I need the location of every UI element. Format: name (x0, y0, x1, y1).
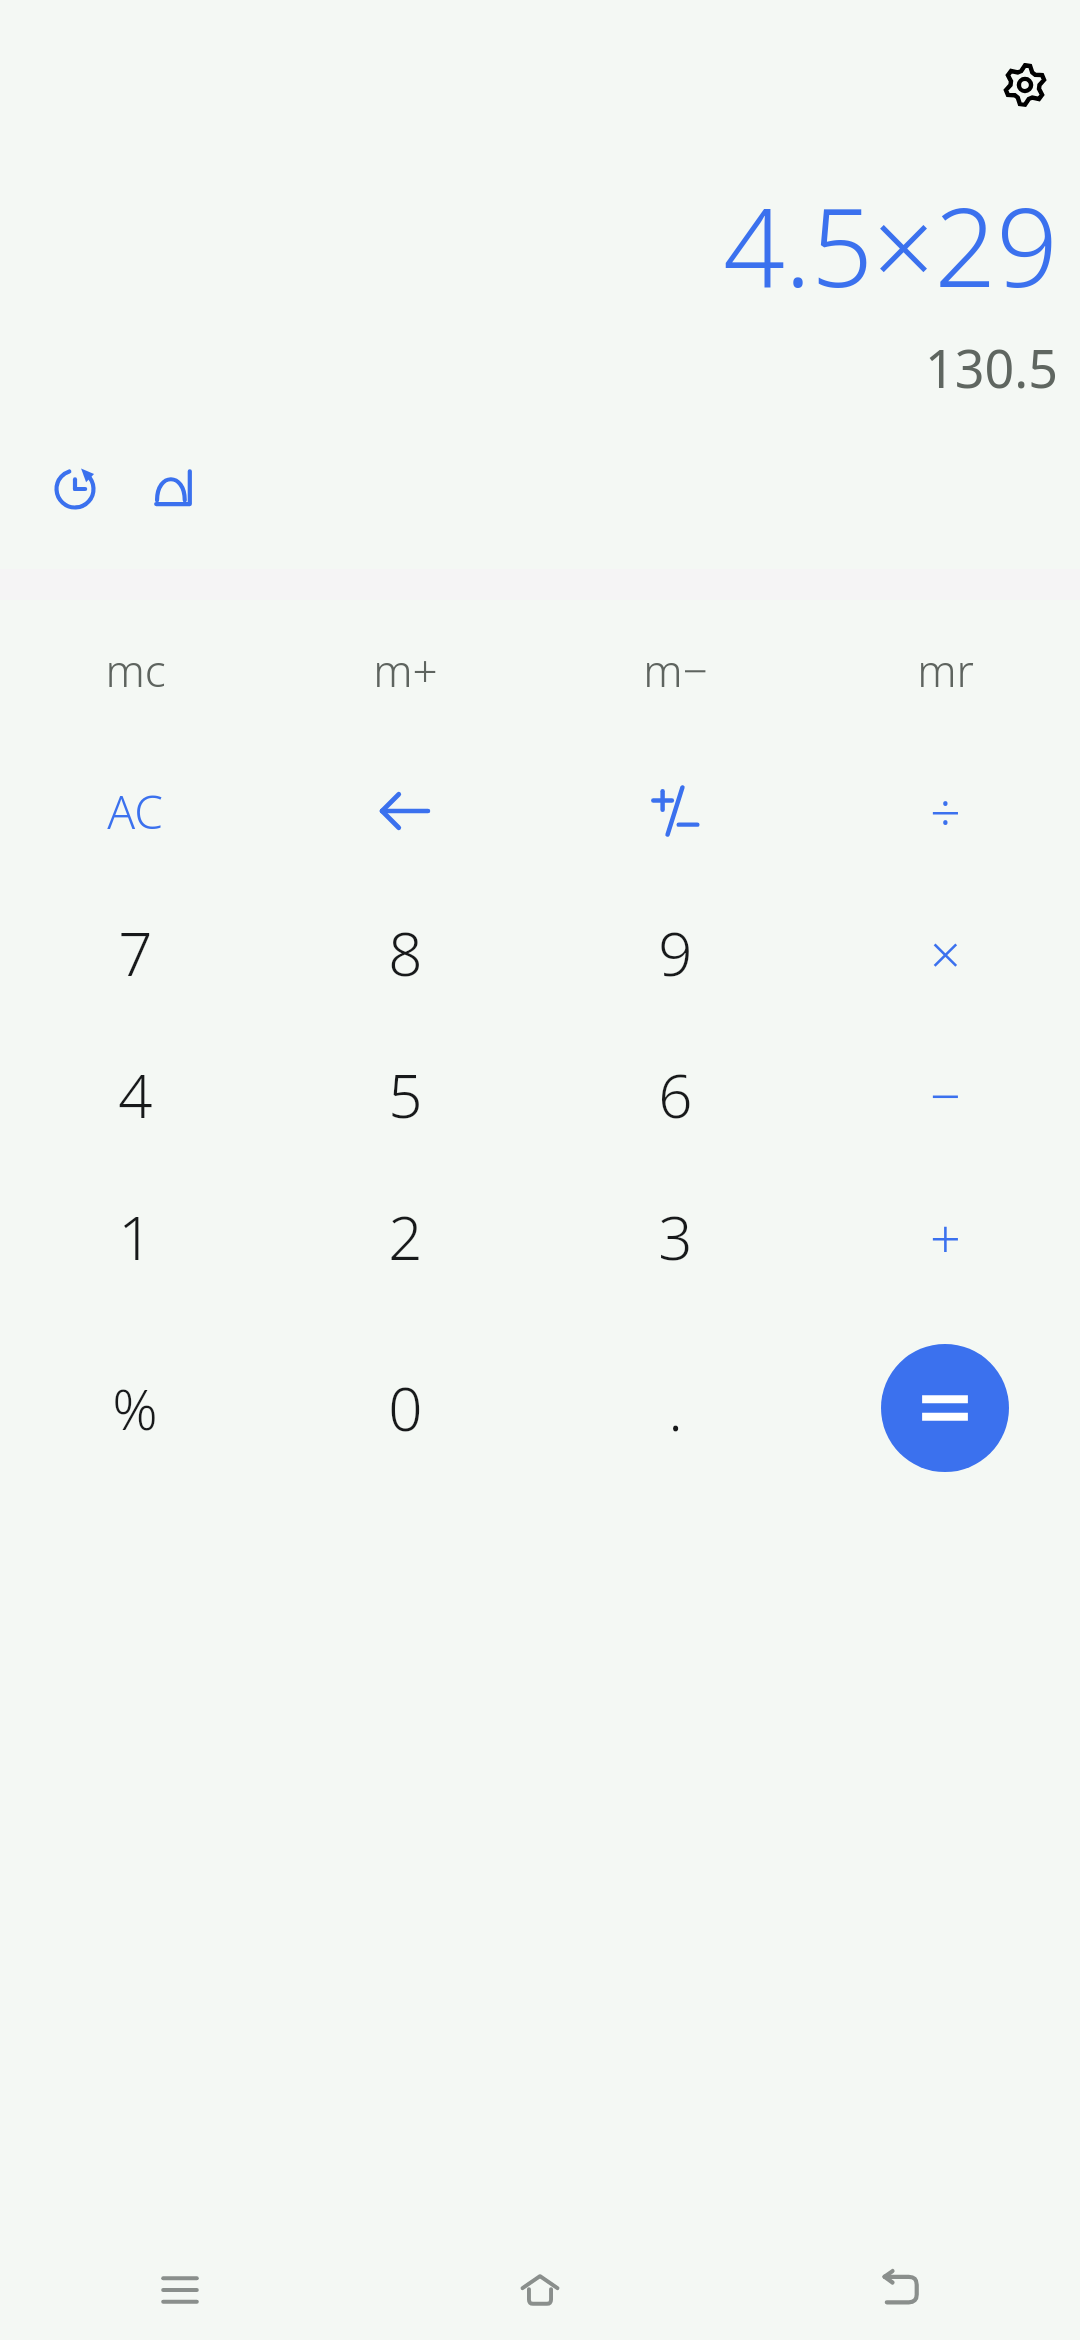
staticText: m+ (373, 640, 438, 700)
staticText: 6 (658, 1054, 693, 1136)
staticText: × (930, 916, 961, 990)
staticText: AC (107, 780, 163, 843)
button[interactable]: − (810, 1024, 1080, 1166)
staticText: mc (105, 640, 166, 700)
staticText: − (930, 1058, 961, 1132)
button[interactable]: Plus minus (540, 740, 810, 882)
button[interactable]: Back (720, 2240, 1080, 2340)
staticText: 4.5×29 (723, 172, 1058, 319)
staticText: m− (643, 640, 708, 700)
button[interactable]: Backspace (270, 740, 540, 882)
button[interactable]: History (38, 452, 112, 526)
button[interactable]: + (810, 1166, 1080, 1308)
button[interactable]: . (540, 1308, 810, 1508)
button[interactable]: 1 (0, 1166, 270, 1308)
button[interactable]: 7 (0, 882, 270, 1024)
button[interactable]: 0 (270, 1308, 540, 1508)
staticText: + (930, 1200, 961, 1274)
staticText: 4 (118, 1054, 153, 1136)
staticText: 7 (118, 912, 153, 994)
button[interactable]: Equals (881, 1344, 1009, 1472)
staticText: mr (917, 640, 974, 700)
button[interactable]: Graph (136, 452, 210, 526)
staticText: ÷ (930, 774, 961, 848)
button[interactable]: ÷ (810, 740, 1080, 882)
button[interactable]: m− (540, 600, 810, 740)
button[interactable]: AC (0, 740, 270, 882)
button[interactable]: 8 (270, 882, 540, 1024)
staticText: % (112, 1370, 158, 1446)
staticText: 1 (118, 1196, 153, 1278)
button[interactable]: 9 (540, 882, 810, 1024)
button[interactable]: mr (810, 600, 1080, 740)
staticText: 3 (658, 1196, 693, 1278)
button[interactable]: mc (0, 600, 270, 740)
button[interactable]: Recent apps (0, 2240, 360, 2340)
staticText: 130.5 (925, 332, 1058, 403)
staticText: . (668, 1367, 683, 1449)
button[interactable]: Settings (990, 50, 1060, 120)
staticText: 8 (388, 912, 423, 994)
staticText: 0 (388, 1367, 423, 1449)
staticText: 5 (388, 1054, 423, 1136)
button[interactable]: Home (360, 2240, 720, 2340)
button[interactable]: 2 (270, 1166, 540, 1308)
staticText: 2 (388, 1196, 423, 1278)
button[interactable]: × (810, 882, 1080, 1024)
button[interactable]: 3 (540, 1166, 810, 1308)
button[interactable]: m+ (270, 600, 540, 740)
button[interactable]: 6 (540, 1024, 810, 1166)
button[interactable]: 5 (270, 1024, 540, 1166)
button[interactable]: 4 (0, 1024, 270, 1166)
button[interactable]: % (0, 1308, 270, 1508)
staticText: 9 (658, 912, 693, 994)
